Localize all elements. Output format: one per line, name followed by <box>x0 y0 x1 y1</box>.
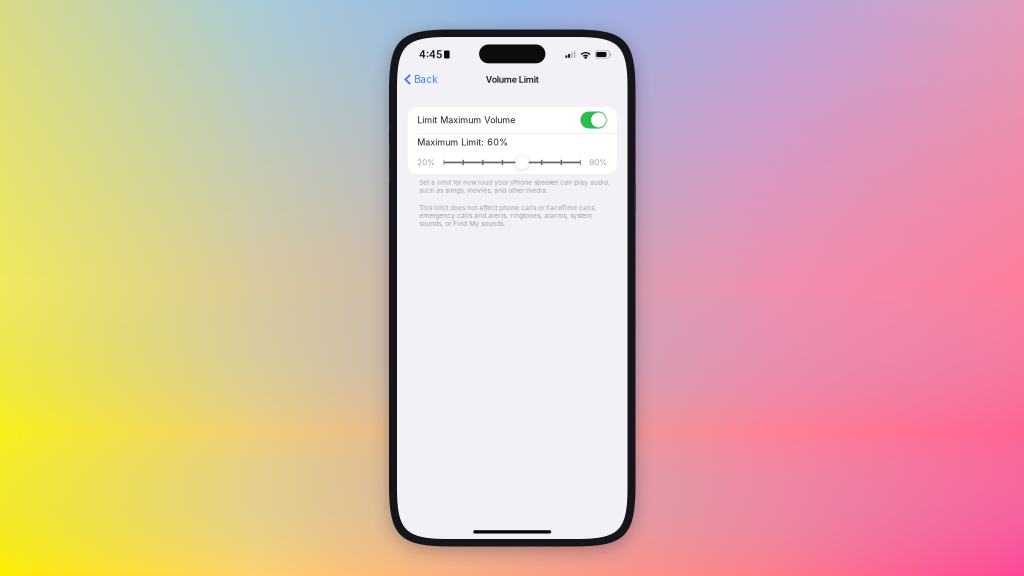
staticText: 20% <box>417 158 435 167</box>
staticText: Maximum Limit: 60% <box>417 137 508 148</box>
staticText: Volume Limit <box>486 74 539 85</box>
button[interactable]: Limit Maximum Volume <box>580 111 607 128</box>
button[interactable]: Back <box>397 67 444 91</box>
staticText: 90% <box>589 158 607 167</box>
staticText: Limit Maximum Volume <box>417 115 515 125</box>
staticText: 4:45 <box>419 48 442 61</box>
staticText: Set a limit for how loud your iPhone spe… <box>419 178 610 194</box>
staticText: Back <box>414 73 437 85</box>
staticText: This limit does not affect phone calls o… <box>419 204 596 227</box>
